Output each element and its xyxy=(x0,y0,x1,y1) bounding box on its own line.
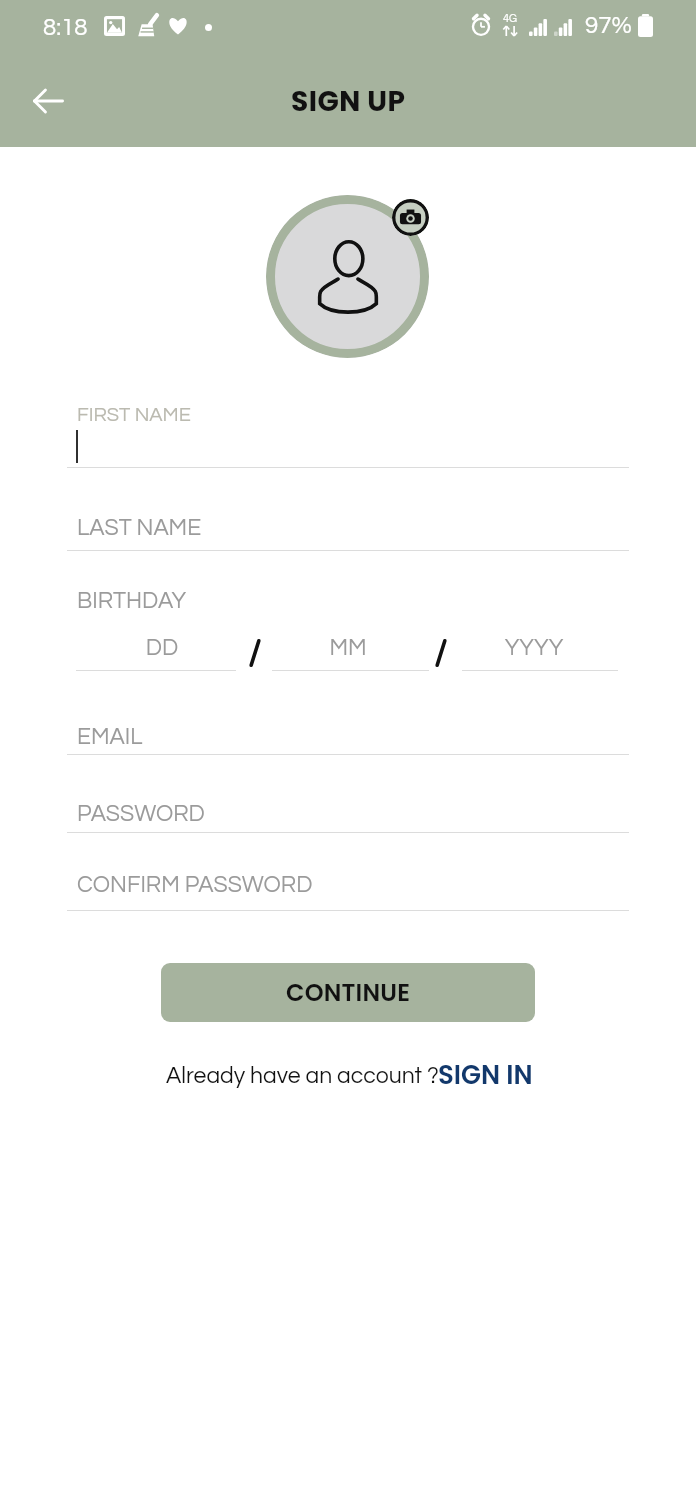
staticText: EMAIL xyxy=(77,725,143,749)
button[interactable]: SIGN IN xyxy=(438,1057,533,1093)
staticText: YYYY xyxy=(484,636,584,660)
staticText: SIGN IN xyxy=(438,1057,533,1093)
button[interactable]: Profile photo xyxy=(266,195,429,358)
staticText: BIRTHDAY xyxy=(77,589,187,613)
staticText: 8:18 xyxy=(43,15,88,40)
staticText: SIGN UP xyxy=(291,82,406,121)
staticText: DD xyxy=(112,636,212,660)
staticText: FIRST NAME xyxy=(77,405,191,426)
staticText: CONFIRM PASSWORD xyxy=(77,873,313,897)
staticText: MM xyxy=(298,636,398,660)
button[interactable]: Back xyxy=(12,78,82,124)
staticText: PASSWORD xyxy=(77,802,205,826)
staticText: LAST NAME xyxy=(77,516,202,540)
staticText: Already have an account ? xyxy=(166,1064,439,1088)
staticText: 97% xyxy=(585,13,632,38)
staticText: 4G xyxy=(503,13,518,24)
staticText: CONTINUE xyxy=(286,976,411,1010)
button[interactable]: CONTINUE xyxy=(161,963,535,1022)
button[interactable]: Change profile photo xyxy=(392,199,429,236)
